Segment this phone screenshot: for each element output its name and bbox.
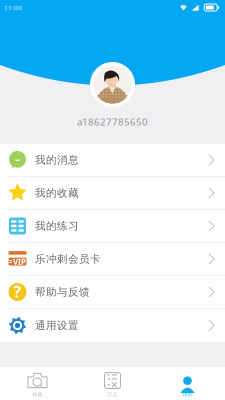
button[interactable]: 订正 — [75, 367, 150, 400]
button[interactable]: 我的收藏 — [0, 177, 225, 210]
button[interactable]: 拍题 — [0, 367, 75, 400]
button[interactable]: 我的 — [150, 367, 225, 400]
staticText: 我的收藏 — [35, 186, 79, 200]
staticText: a18627785650 — [77, 115, 148, 128]
staticText: VIP — [13, 256, 26, 267]
staticText: 帮助与反馈 — [35, 285, 90, 299]
button[interactable]: VIP — [0, 243, 225, 276]
staticText: 通用设置 — [35, 319, 79, 332]
staticText: 拍题 — [32, 391, 42, 397]
button[interactable]: ? — [0, 276, 225, 309]
staticText: 订正 — [107, 391, 117, 397]
staticText: 11:00 — [4, 3, 22, 12]
staticText: ? — [13, 281, 21, 302]
button[interactable]: 我的消息 — [0, 144, 225, 177]
button[interactable]: 我的练习 — [0, 210, 225, 243]
staticText: 我的练习 — [35, 219, 79, 233]
staticText: 我的消息 — [35, 153, 79, 167]
staticText: 乐冲刺会员卡 — [35, 252, 101, 266]
staticText: 我的 — [182, 391, 192, 397]
button[interactable]: 通用设置 — [0, 309, 225, 342]
